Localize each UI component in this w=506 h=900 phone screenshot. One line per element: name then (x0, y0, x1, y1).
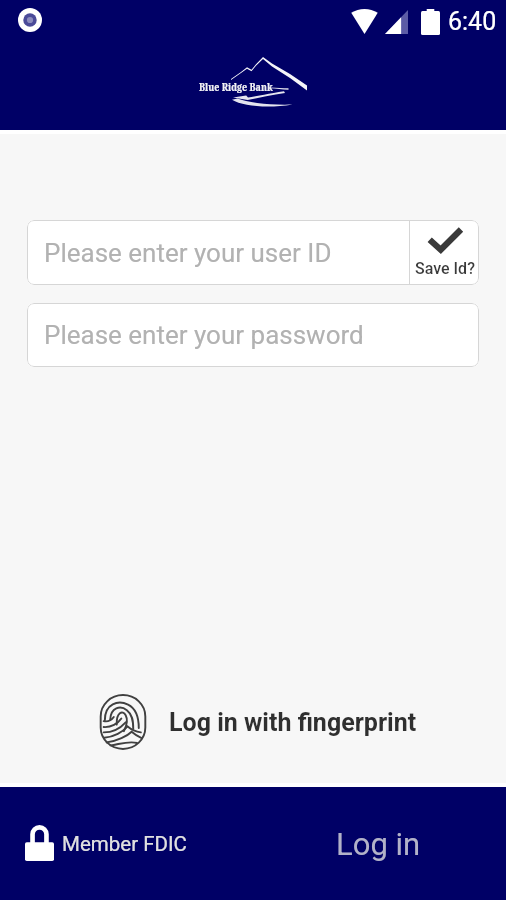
button[interactable]: Save Id (410, 220, 479, 285)
staticText: Blue Ridge Bank (199, 79, 273, 95)
button[interactable]: Log in (377, 810, 506, 878)
staticText: Log in with fingerprint (169, 708, 417, 737)
button[interactable]: User ID input (27, 220, 409, 285)
staticText: Please enter your password (44, 320, 364, 350)
button[interactable]: Member FDIC (0, 815, 197, 873)
staticText: Log in (336, 826, 421, 862)
button[interactable]: Password input (27, 303, 479, 367)
staticText: Please enter your user ID (44, 238, 332, 268)
other: Notification (18, 8, 42, 32)
button[interactable]: Log in with fingerprint (86, 685, 417, 759)
staticText: 6:40 (448, 7, 497, 36)
staticText: Save Id? (415, 259, 475, 278)
staticText: Member FDIC (62, 832, 187, 856)
